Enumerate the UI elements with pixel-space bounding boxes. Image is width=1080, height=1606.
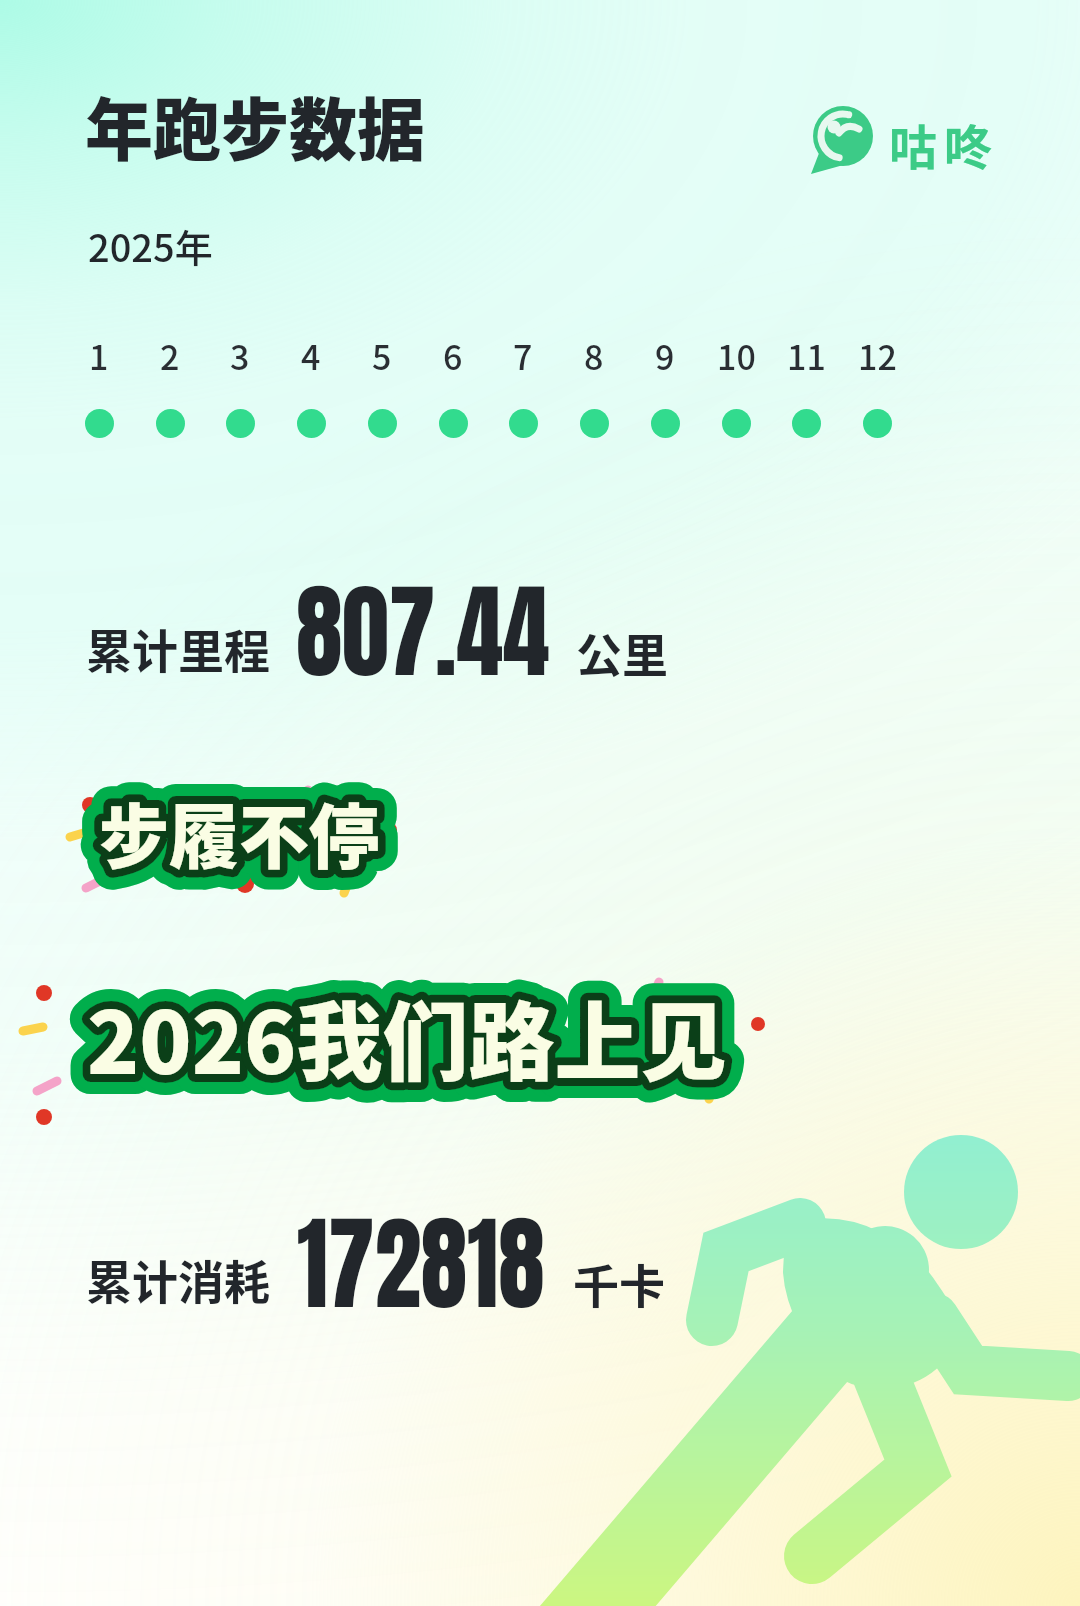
staticText: 2026我们路上见 bbox=[87, 974, 727, 1099]
button[interactable]: 6 bbox=[426, 331, 480, 438]
staticText: 1 bbox=[89, 331, 109, 380]
staticText: 7 bbox=[513, 331, 533, 380]
staticText: 步履不停 bbox=[99, 782, 379, 883]
staticText: 步履不停 bbox=[99, 782, 379, 883]
staticText: 累计里程 bbox=[86, 615, 270, 682]
staticText: 2026我们路上见 bbox=[87, 974, 727, 1099]
button[interactable]: 7 bbox=[496, 331, 550, 438]
button[interactable] bbox=[80, 552, 682, 664]
staticText: 累计消耗 bbox=[86, 1246, 270, 1313]
staticText: 9 bbox=[655, 331, 675, 380]
staticText: 11 bbox=[787, 331, 826, 380]
button[interactable]: 2026我们路上见 bbox=[87, 974, 727, 1099]
button[interactable]: 3 bbox=[213, 331, 267, 438]
staticText: 2025年 bbox=[88, 218, 213, 273]
staticText: 807.44 bbox=[296, 555, 550, 709]
button[interactable]: 5 bbox=[355, 331, 409, 438]
staticText: 4 bbox=[301, 331, 321, 380]
button[interactable]: 12 bbox=[850, 331, 904, 438]
staticText: 172818 bbox=[297, 1187, 545, 1341]
button[interactable]: 11 bbox=[779, 331, 833, 438]
staticText: 10 bbox=[717, 331, 756, 380]
button[interactable]: 1 bbox=[72, 331, 126, 438]
staticText: 5 bbox=[372, 331, 392, 380]
button[interactable]: 步履不停 bbox=[99, 782, 379, 883]
staticText: 公里 bbox=[576, 619, 668, 686]
button[interactable]: 咕咚 bbox=[808, 98, 998, 178]
button[interactable]: 4 bbox=[284, 331, 338, 438]
staticText: 咕咚 bbox=[889, 109, 1000, 179]
button[interactable]: 8 bbox=[567, 331, 621, 438]
staticText: 12 bbox=[858, 331, 897, 380]
button[interactable]: 9 bbox=[638, 331, 692, 438]
staticText: 8 bbox=[584, 331, 604, 380]
staticText: 千卡 bbox=[573, 1250, 665, 1317]
staticText: 步履不停 bbox=[99, 782, 379, 883]
staticText: 2 bbox=[160, 331, 180, 380]
button[interactable]: 10 bbox=[709, 331, 763, 438]
button[interactable] bbox=[80, 1184, 679, 1296]
button[interactable]: 2 bbox=[143, 331, 197, 438]
staticText: 6 bbox=[443, 331, 463, 380]
staticText: 2026我们路上见 bbox=[87, 974, 727, 1099]
staticText: 3 bbox=[230, 331, 250, 380]
staticText: 年跑步数据 bbox=[85, 76, 426, 174]
